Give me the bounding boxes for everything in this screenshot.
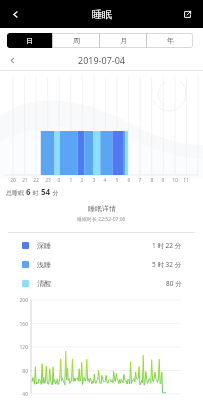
staticText: 周 [73, 36, 80, 45]
staticText: 总睡眠 [6, 189, 26, 197]
button[interactable]: 年 [147, 33, 193, 48]
staticText: 10 [169, 177, 181, 184]
staticText: 日 [26, 36, 33, 45]
staticText: 1 时 22 分 [152, 241, 182, 250]
staticText: 80 [4, 368, 28, 375]
staticText: 11 [180, 177, 192, 184]
staticText: 9 [157, 177, 169, 184]
staticText: 4 [99, 177, 111, 184]
button[interactable]: Share [172, 0, 203, 28]
staticText: 5 [111, 177, 123, 184]
button[interactable]: Back [0, 0, 31, 28]
staticText: 54 [41, 186, 51, 197]
staticText: 5 时 32 分 [152, 260, 182, 269]
staticText: 120 [4, 344, 28, 351]
button[interactable]: 深睡 [22, 240, 182, 250]
staticText: 浅睡 [37, 260, 51, 269]
button[interactable]: 周 [53, 33, 99, 48]
staticText: 6 [123, 177, 135, 184]
staticText: 时 [31, 189, 41, 197]
staticText: 深睡 [37, 241, 51, 250]
staticText: 睡眠时长 22:52-07:06 [77, 216, 126, 223]
button[interactable]: 月 [100, 33, 146, 48]
staticText: 200 [4, 297, 28, 304]
staticText: 20 [7, 177, 19, 184]
staticText: 1 [65, 177, 77, 184]
staticText: 清醒 [37, 279, 51, 288]
staticText: 2019-07-04 [78, 54, 125, 66]
staticText: 21 [19, 177, 31, 184]
staticText: 分 [51, 189, 59, 197]
button[interactable]: 清醒 [22, 278, 182, 288]
button[interactable]: 浅睡 [22, 259, 182, 269]
staticText: 7 [134, 177, 146, 184]
staticText: 6 [26, 186, 31, 197]
staticText: 80 分 [166, 279, 182, 288]
staticText: 2 [76, 177, 88, 184]
staticText: 睡眠详情 [88, 204, 116, 213]
staticText: 160 [4, 321, 28, 328]
staticText: 23 [42, 177, 54, 184]
staticText: 40 [4, 391, 28, 398]
button[interactable]: 日 [7, 33, 52, 48]
staticText: 22 [30, 177, 42, 184]
staticText: 3 [88, 177, 100, 184]
button[interactable]: Previous day [4, 52, 20, 68]
staticText: 月 [120, 36, 127, 45]
staticText: 0 [53, 177, 65, 184]
staticText: 睡眠 [92, 8, 112, 21]
staticText: 8 [146, 177, 158, 184]
staticText: 年 [167, 36, 174, 45]
